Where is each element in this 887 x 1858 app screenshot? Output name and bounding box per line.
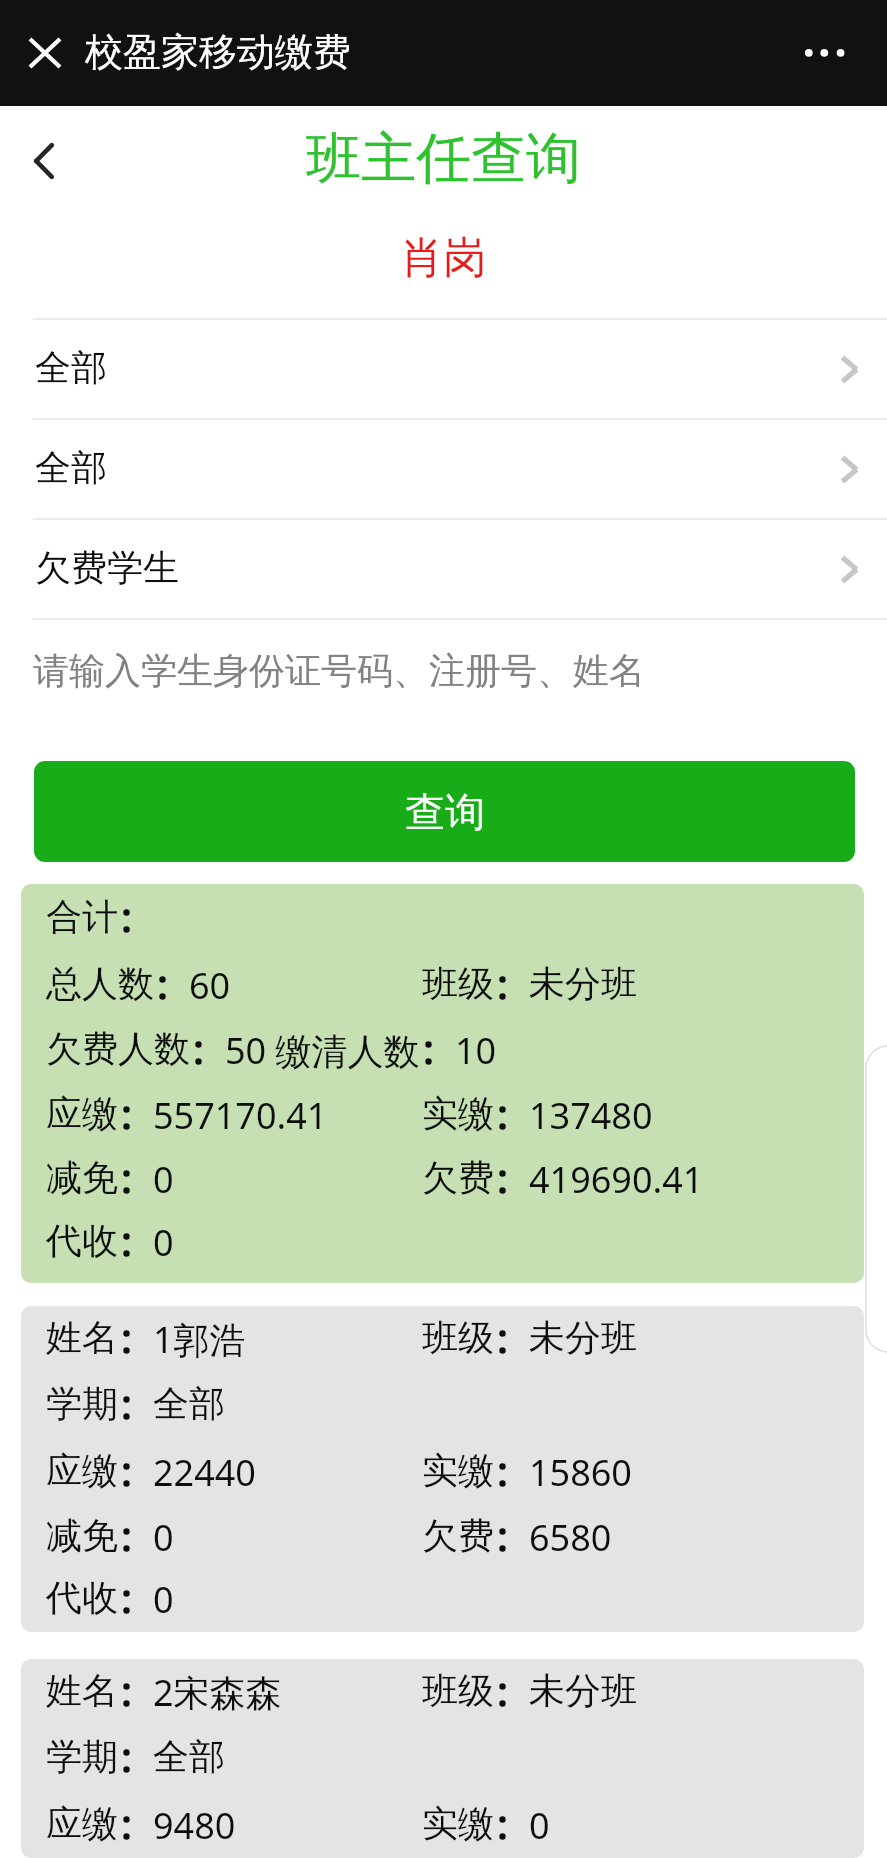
staticText: 0	[153, 1155, 174, 1204]
staticText: 校盈家移动缴费	[85, 28, 351, 76]
staticText: 0	[529, 1801, 550, 1850]
staticText: 0	[153, 1218, 174, 1267]
staticText: 班级	[422, 1315, 494, 1360]
staticText: 137480	[529, 1091, 653, 1140]
staticText: 全部	[153, 1381, 225, 1426]
staticText: 班主任查询	[0, 124, 887, 193]
staticText: 全部	[35, 345, 107, 390]
staticText: 班级	[422, 961, 494, 1006]
staticText: 557170.41	[153, 1091, 328, 1140]
staticText: 2宋森森	[153, 1668, 282, 1717]
staticText: 全部	[153, 1734, 225, 1779]
staticText: 欠费人数	[46, 1026, 190, 1071]
staticText: 欠费	[422, 1155, 494, 1200]
button[interactable]: 查询	[34, 761, 855, 862]
staticText: 0	[153, 1513, 174, 1562]
staticText: 60	[189, 961, 231, 1010]
staticText: 学期	[46, 1381, 118, 1426]
staticText: 查询	[405, 787, 485, 837]
button[interactable]: 全部	[0, 420, 887, 518]
staticText: 实缴	[422, 1801, 494, 1846]
staticText: 未分班	[529, 1668, 637, 1713]
button[interactable]: 姓名	[21, 1306, 864, 1632]
staticText: 实缴	[422, 1091, 494, 1136]
staticText: 姓名	[46, 1315, 118, 1360]
staticText: 请输入学生身份证号码、注册号、姓名	[33, 648, 645, 693]
staticText: 班级	[422, 1668, 494, 1713]
staticText: 欠费	[422, 1513, 494, 1558]
staticText: 应缴	[46, 1801, 118, 1846]
button[interactable]: 姓名	[21, 1659, 864, 1858]
staticText: 50 缴清人数	[225, 1026, 420, 1075]
button[interactable]: 全部	[0, 320, 887, 418]
staticText: 合计	[46, 894, 118, 939]
staticText: 实缴	[422, 1448, 494, 1493]
staticText: 肖岗	[0, 231, 887, 285]
staticText: 姓名	[46, 1668, 118, 1713]
button[interactable]: Close	[5, 23, 65, 83]
staticText: 1郭浩	[153, 1315, 246, 1364]
staticText: 减免	[46, 1513, 118, 1558]
staticText: 应缴	[46, 1448, 118, 1493]
staticText: 419690.41	[529, 1155, 704, 1204]
staticText: 0	[153, 1575, 174, 1624]
staticText: 学期	[46, 1734, 118, 1779]
button[interactable]: More options	[785, 23, 865, 83]
staticText: 减免	[46, 1155, 118, 1200]
staticText: 未分班	[529, 1315, 637, 1360]
staticText: 10	[455, 1026, 497, 1075]
staticText: 22440	[153, 1448, 256, 1497]
staticText: 应缴	[46, 1091, 118, 1136]
staticText: 15860	[529, 1448, 632, 1497]
staticText: 代收	[46, 1575, 118, 1620]
staticText: 6580	[529, 1513, 612, 1562]
staticText: 欠费学生	[35, 545, 179, 590]
staticText: 总人数	[46, 961, 154, 1006]
button[interactable]: Back	[8, 114, 80, 186]
staticText: 全部	[35, 445, 107, 490]
staticText: 9480	[153, 1801, 236, 1850]
staticText: 未分班	[529, 961, 637, 1006]
staticText: 代收	[46, 1218, 118, 1263]
button[interactable]: 欠费学生	[0, 520, 887, 618]
